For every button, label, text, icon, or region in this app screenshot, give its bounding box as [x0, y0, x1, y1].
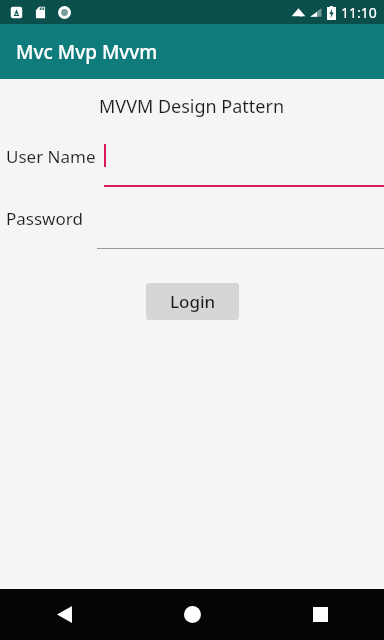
staticText: MVVM Design Pattern: [99, 94, 285, 119]
button[interactable]: Recent apps: [256, 589, 384, 640]
button[interactable]: Login: [146, 283, 239, 320]
button[interactable]: [104, 142, 384, 187]
staticText: Mvc Mvp Mvvm: [16, 39, 158, 65]
staticText: 11:10: [341, 3, 377, 22]
button[interactable]: Home: [128, 589, 256, 640]
staticText: User Name: [6, 145, 96, 168]
staticText: Login: [170, 290, 216, 313]
button[interactable]: Back: [0, 589, 128, 640]
button[interactable]: [97, 204, 384, 249]
staticText: Password: [6, 207, 83, 230]
